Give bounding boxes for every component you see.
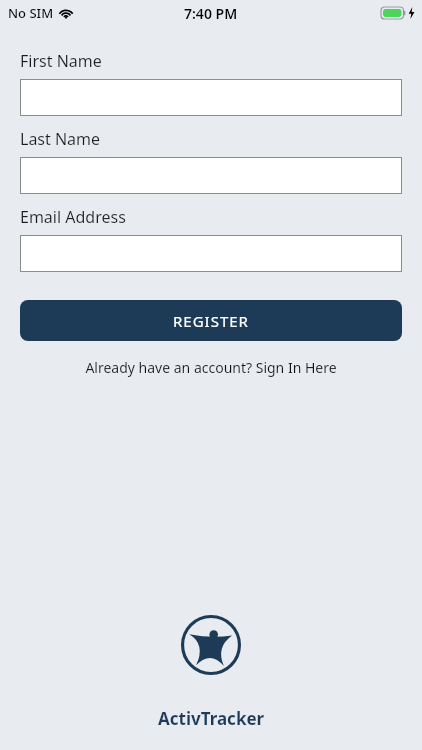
staticText: First Name: [20, 50, 102, 72]
button[interactable]: [20, 235, 402, 272]
staticText: REGISTER: [173, 311, 249, 331]
button[interactable]: [20, 157, 402, 194]
other: ActivTracker logo: [181, 615, 241, 675]
staticText: No SIM: [8, 4, 54, 22]
button[interactable]: Already have an account? Sign In Here: [20, 358, 402, 377]
button[interactable]: [20, 79, 402, 116]
staticText: 7:40 PM: [184, 4, 238, 23]
staticText: Last Name: [20, 128, 101, 150]
staticText: Already have an account? Sign In Here: [85, 358, 337, 377]
button[interactable]: REGISTER: [20, 300, 402, 341]
staticText: Email Address: [20, 206, 126, 228]
staticText: ActivTracker: [158, 707, 265, 730]
